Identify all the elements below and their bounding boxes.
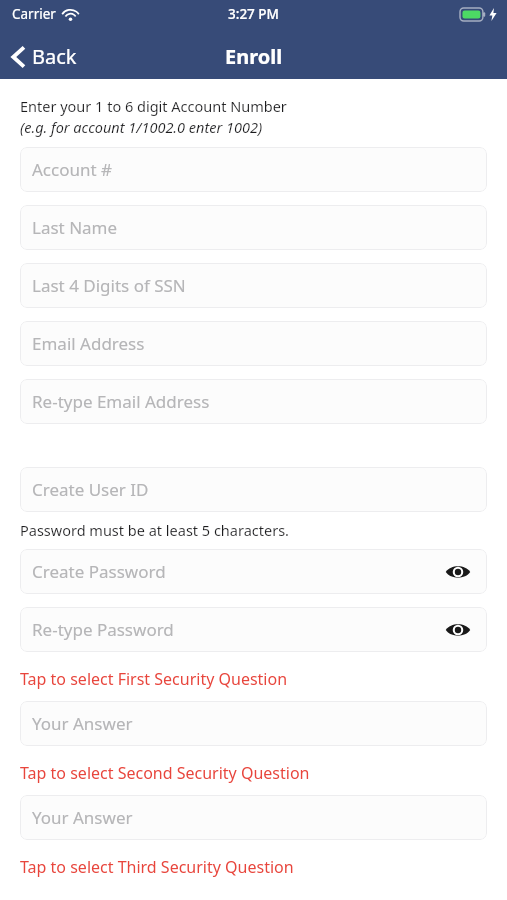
button[interactable]: Re-type Password xyxy=(20,607,487,652)
staticText: Last 4 Digits of SSN xyxy=(32,274,186,297)
staticText: Last Name xyxy=(32,216,118,239)
staticText: Email Address xyxy=(32,332,145,355)
staticText: (e.g. for account 1/1002.0 enter 1002) xyxy=(20,117,263,137)
staticText: Create Password xyxy=(32,560,166,583)
staticText: Re-type Email Address xyxy=(32,390,210,413)
button[interactable]: Account # xyxy=(20,147,487,192)
staticText: Enroll xyxy=(225,43,283,70)
staticText: Carrier xyxy=(12,5,56,23)
button[interactable]: Email Address xyxy=(20,321,487,366)
staticText: Tap to select First Security Question xyxy=(20,668,288,690)
button[interactable]: Create Password xyxy=(20,549,487,594)
button[interactable]: Last Name xyxy=(20,205,487,250)
button[interactable]: Last 4 Digits of SSN xyxy=(20,263,487,308)
button[interactable]: Create User ID xyxy=(20,467,487,512)
button[interactable]: Your Answer xyxy=(20,701,487,746)
button[interactable]: Re-type Email Address xyxy=(20,379,487,424)
button[interactable]: Show password xyxy=(443,557,473,587)
button[interactable]: Tap to select Second Security Question xyxy=(0,760,507,786)
button[interactable]: Show password xyxy=(443,615,473,645)
staticText: 3:27 PM xyxy=(228,5,279,23)
button[interactable]: Your Answer xyxy=(20,795,487,840)
button[interactable]: Tap to select Third Security Question xyxy=(0,854,507,880)
button[interactable]: Tap to select First Security Question xyxy=(0,666,507,692)
staticText: Create User ID xyxy=(32,478,149,501)
staticText: Re-type Password xyxy=(32,618,174,641)
staticText: Your Answer xyxy=(32,806,133,829)
staticText: Account # xyxy=(32,158,113,181)
staticText: Your Answer xyxy=(32,712,133,735)
staticText: Enter your 1 to 6 digit Account Number xyxy=(20,96,287,116)
button[interactable]: Back xyxy=(0,39,89,76)
staticText: Back xyxy=(32,43,77,70)
staticText: Tap to select Second Security Question xyxy=(20,762,310,784)
staticText: Password must be at least 5 characters. xyxy=(20,520,289,540)
staticText: Tap to select Third Security Question xyxy=(20,856,294,878)
